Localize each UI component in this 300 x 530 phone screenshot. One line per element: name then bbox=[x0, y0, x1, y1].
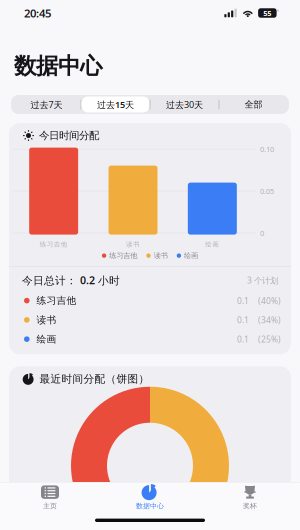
staticText: 练习吉他 bbox=[109, 251, 137, 260]
staticText: 过去15天 bbox=[97, 98, 134, 111]
button[interactable]: 主页 bbox=[0, 482, 100, 512]
button[interactable]: 全部 bbox=[219, 96, 287, 112]
staticText: 0.05 bbox=[260, 186, 274, 196]
staticText: 绘画 bbox=[184, 251, 198, 260]
staticText: 0 bbox=[260, 228, 264, 238]
staticText: 练习吉他 bbox=[37, 294, 77, 307]
staticText: (25%) bbox=[258, 333, 281, 345]
staticText: 20:45 bbox=[24, 5, 51, 21]
staticText: 0.10 bbox=[260, 144, 274, 154]
staticText: 过去30天 bbox=[166, 98, 203, 111]
button[interactable]: 过去7天 bbox=[12, 96, 80, 112]
staticText: 绘画 bbox=[37, 333, 57, 345]
staticText: 0.1 bbox=[237, 333, 249, 345]
staticText: 数据中心 bbox=[14, 52, 102, 80]
staticText: 0.1 bbox=[237, 314, 249, 326]
staticText: 全部 bbox=[244, 99, 262, 110]
staticText: 读书 bbox=[37, 314, 57, 326]
staticText: (34%) bbox=[258, 314, 281, 326]
staticText: 奖杯 bbox=[243, 502, 257, 510]
staticText: 55 bbox=[263, 8, 271, 18]
button[interactable]: 过去30天 bbox=[150, 96, 218, 112]
staticText: 读书 bbox=[126, 240, 140, 248]
staticText: 主页 bbox=[43, 502, 57, 510]
staticText: 练习吉他 bbox=[40, 240, 68, 248]
staticText: 过去7天 bbox=[30, 98, 62, 111]
staticText: 数据中心 bbox=[136, 502, 164, 510]
button[interactable]: 奖杯 bbox=[200, 482, 300, 512]
staticText: 绘画 bbox=[205, 240, 219, 248]
staticText: 读书 bbox=[154, 251, 168, 260]
staticText: 今日总计： 0.2 小时 bbox=[22, 273, 120, 287]
staticText: 0.1 bbox=[237, 295, 249, 306]
staticText: 3 个计划 bbox=[247, 274, 278, 286]
staticText: (40%) bbox=[258, 295, 281, 306]
staticText: 今日时间分配 bbox=[39, 129, 99, 142]
button[interactable]: 过去15天 bbox=[81, 96, 149, 112]
staticText: 最近时间分配（饼图） bbox=[40, 372, 150, 386]
button[interactable]: 数据中心 bbox=[100, 482, 200, 512]
